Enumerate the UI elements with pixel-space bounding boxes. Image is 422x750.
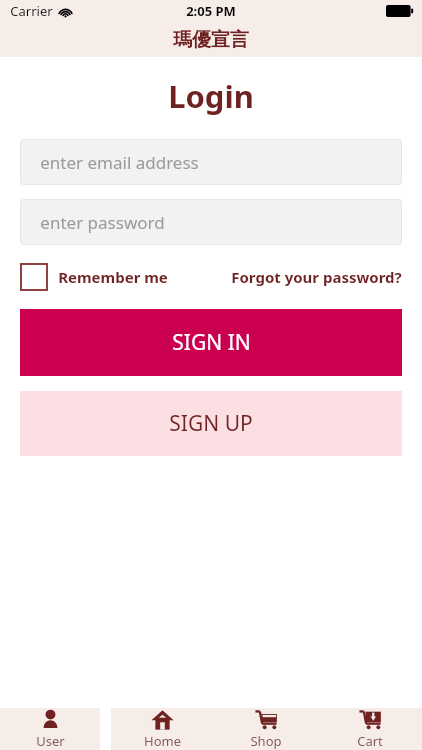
button[interactable]: SIGN UP bbox=[20, 391, 402, 456]
button[interactable]: Cart bbox=[318, 708, 422, 750]
staticText: enter password bbox=[40, 211, 165, 234]
other: Home bbox=[151, 708, 174, 731]
staticText: 瑪優宣言 bbox=[173, 28, 249, 52]
button[interactable]: Remember me bbox=[20, 263, 168, 291]
staticText: Cart bbox=[357, 732, 383, 750]
staticText: enter email address bbox=[40, 151, 199, 174]
staticText: 2:05 PM bbox=[186, 2, 236, 20]
button[interactable]: Shop bbox=[214, 708, 318, 750]
staticText: Carrier bbox=[10, 2, 53, 20]
other: Cart bbox=[359, 708, 382, 731]
staticText: Shop bbox=[250, 732, 282, 750]
staticText: Login bbox=[168, 75, 254, 117]
button[interactable]: enter password bbox=[20, 199, 402, 245]
staticText: User bbox=[36, 732, 65, 750]
button[interactable]: Forgot your password? bbox=[231, 267, 402, 287]
button[interactable]: Home bbox=[111, 708, 214, 750]
button[interactable]: SIGN IN bbox=[20, 309, 402, 376]
button[interactable]: enter email address bbox=[20, 139, 402, 185]
other: User bbox=[40, 709, 61, 730]
staticText: Remember me bbox=[58, 267, 168, 287]
staticText: Home bbox=[144, 732, 181, 750]
staticText: SIGN IN bbox=[172, 328, 251, 357]
button[interactable]: User bbox=[0, 708, 100, 750]
staticText: SIGN UP bbox=[169, 409, 253, 438]
staticText: Forgot your password? bbox=[231, 267, 402, 287]
other: Shop bbox=[255, 708, 278, 731]
